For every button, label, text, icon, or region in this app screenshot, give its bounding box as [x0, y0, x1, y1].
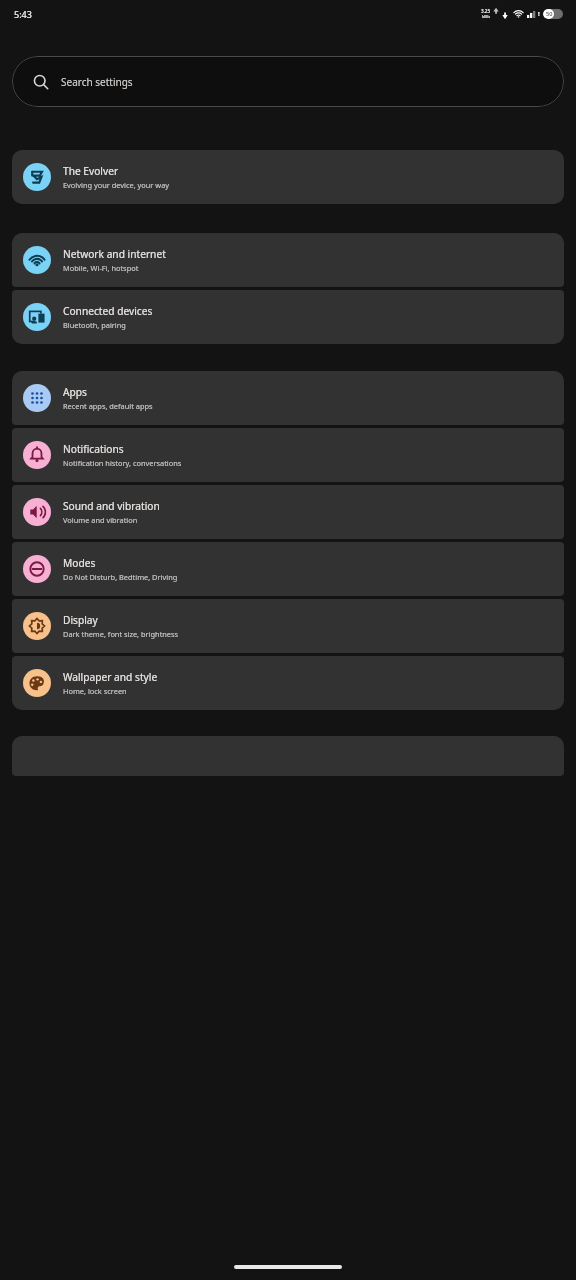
- staticText: kB/s: [482, 14, 491, 19]
- staticText: The Evolver: [63, 164, 119, 178]
- staticText: 5:43: [14, 8, 32, 20]
- staticText: Notification history, conversations: [63, 458, 182, 468]
- staticText: Connected devices: [63, 304, 153, 318]
- staticText: Apps: [63, 385, 87, 399]
- staticText: Volume and vibration: [63, 515, 138, 525]
- staticText: Evolving your device, your way: [63, 180, 170, 190]
- staticText: Recent apps, default apps: [63, 401, 153, 411]
- staticText: Wallpaper and style: [63, 670, 158, 684]
- staticText: Mobile, Wi-Fi, hotspot: [63, 263, 139, 273]
- staticText: Dark theme, font size, brightness: [63, 629, 179, 639]
- staticText: Network and internet: [63, 247, 166, 261]
- staticText: Notifications: [63, 442, 124, 456]
- staticText: Search settings: [61, 75, 133, 89]
- button[interactable]: Wallpaper and style: [12, 656, 564, 710]
- button[interactable]: Search: [12, 56, 564, 107]
- button[interactable]: Apps: [12, 371, 564, 425]
- staticText: Modes: [63, 556, 96, 570]
- staticText: Bluetooth, pairing: [63, 320, 126, 330]
- other: Search: [33, 74, 49, 90]
- button[interactable]: Display: [12, 599, 564, 653]
- button[interactable]: Connected devices: [12, 290, 564, 344]
- staticText: 50: [546, 10, 553, 18]
- staticText: !: [538, 10, 540, 18]
- button[interactable]: Modes: [12, 542, 564, 596]
- button[interactable]: Network and internet: [12, 233, 564, 287]
- staticText: Display: [63, 613, 98, 627]
- staticText: Home, lock screen: [63, 686, 127, 696]
- button[interactable]: Sound and vibration: [12, 485, 564, 539]
- button[interactable]: Notifications: [12, 428, 564, 482]
- button[interactable]: The Evolver: [12, 150, 564, 204]
- staticText: Sound and vibration: [63, 499, 160, 513]
- staticText: 3.25: [481, 8, 491, 14]
- staticText: Do Not Disturb, Bedtime, Driving: [63, 572, 178, 582]
